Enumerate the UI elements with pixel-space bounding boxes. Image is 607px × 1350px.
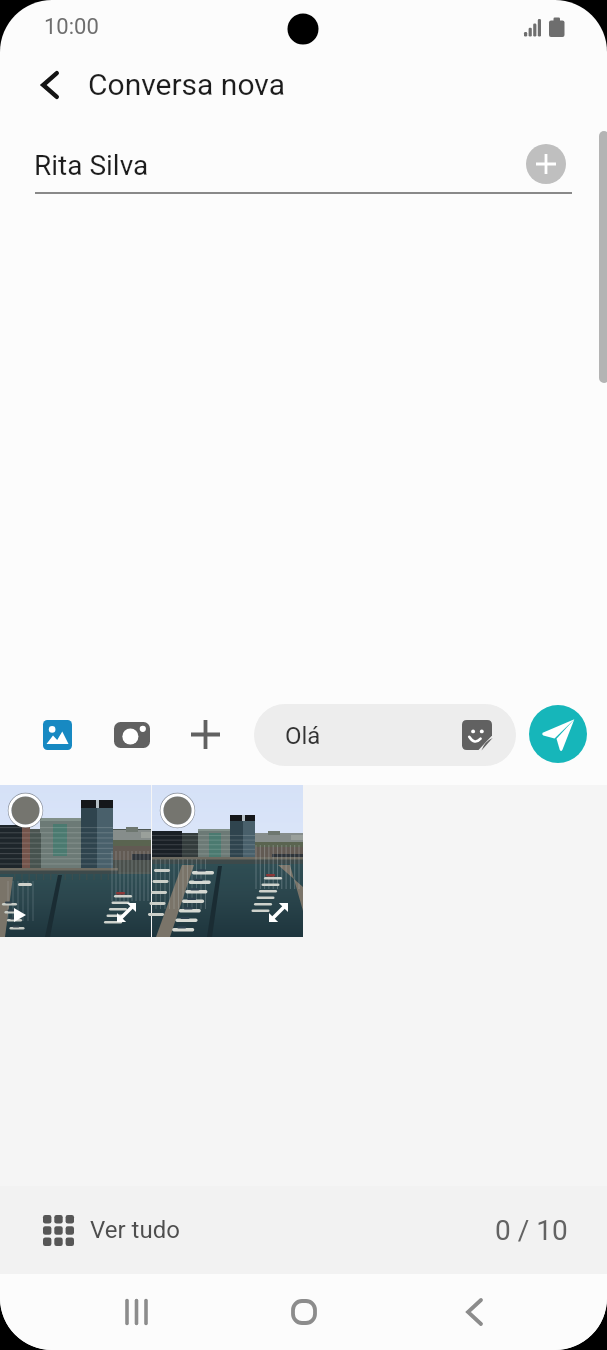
staticText: 0 / 10 bbox=[495, 1214, 568, 1247]
button[interactable]: Stickers bbox=[462, 720, 492, 750]
button[interactable]: Add attachment bbox=[191, 720, 220, 749]
button[interactable]: Back bbox=[25, 60, 74, 109]
button[interactable]: Ver tudo bbox=[0, 1186, 607, 1274]
button[interactable]: Add recipient bbox=[526, 144, 566, 184]
button[interactable] bbox=[0, 785, 151, 937]
staticText: 10:00 bbox=[44, 14, 99, 40]
staticText: Rita Silva bbox=[34, 149, 149, 182]
button[interactable]: Olá bbox=[254, 704, 516, 766]
button[interactable]: Home bbox=[248, 1274, 360, 1350]
button[interactable]: Send bbox=[529, 705, 587, 763]
staticText: Olá bbox=[285, 722, 321, 750]
button[interactable]: Camera bbox=[114, 722, 150, 748]
button[interactable]: Recents bbox=[80, 1274, 192, 1350]
button[interactable]: Gallery bbox=[43, 720, 72, 750]
button[interactable] bbox=[152, 785, 303, 937]
staticText: Conversa nova bbox=[88, 67, 285, 102]
button[interactable]: Back bbox=[418, 1274, 530, 1350]
staticText: Ver tudo bbox=[90, 1216, 180, 1244]
